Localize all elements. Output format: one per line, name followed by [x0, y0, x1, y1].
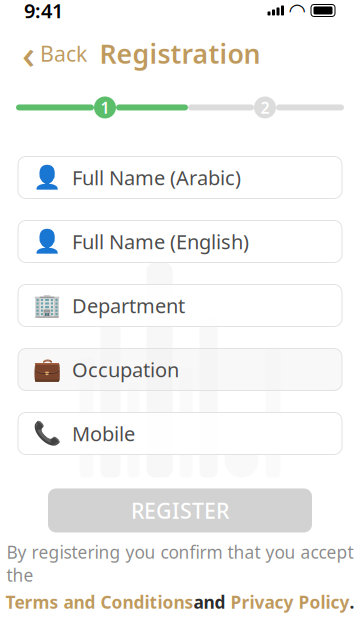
- staticText: 9:41: [24, 0, 63, 24]
- button[interactable]: ‹: [18, 33, 91, 73]
- staticText: ‹: [22, 27, 35, 80]
- staticText: Registration: [99, 36, 260, 71]
- button[interactable]: 👤: [18, 220, 342, 262]
- staticText: 💼: [33, 356, 61, 382]
- staticText: .: [349, 590, 354, 613]
- staticText: REGISTER: [131, 496, 229, 525]
- button[interactable]: 👤: [18, 156, 342, 198]
- button[interactable]: 📞: [18, 412, 342, 454]
- staticText: 🏢: [33, 292, 61, 318]
- staticText: Full Name (Arabic): [72, 164, 241, 191]
- staticText: Department: [72, 292, 185, 319]
- staticText: 📞: [33, 420, 61, 446]
- button[interactable]: 🏢: [18, 284, 342, 326]
- staticText: ◠: [289, 0, 304, 22]
- staticText: 1: [100, 97, 109, 118]
- staticText: Mobile: [72, 420, 135, 447]
- staticText: Privacy Policy: [230, 590, 349, 613]
- button[interactable]: Terms and Conditions: [5, 590, 193, 613]
- staticText: Terms and Conditions: [5, 590, 193, 613]
- button[interactable]: REGISTER: [48, 488, 312, 532]
- staticText: 2: [260, 97, 269, 118]
- button[interactable]: Privacy Policy: [230, 590, 349, 613]
- staticText: 👤: [33, 164, 61, 190]
- staticText: and: [193, 590, 230, 613]
- staticText: By registering you confirm that you acce…: [6, 540, 353, 586]
- staticText: Occupation: [72, 356, 179, 383]
- staticText: 👤: [33, 228, 61, 254]
- staticText: Back: [40, 39, 87, 68]
- button[interactable]: 💼: [18, 348, 342, 390]
- staticText: Full Name (English): [72, 228, 249, 255]
